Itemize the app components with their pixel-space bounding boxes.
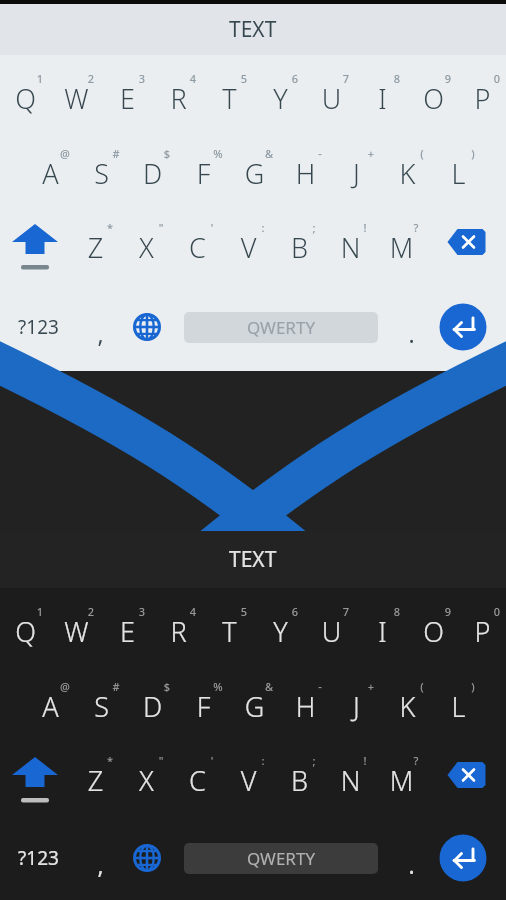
button[interactable]: , [76,816,124,900]
staticText: ; [305,753,323,768]
button[interactable]: B [274,738,325,816]
staticText: I [357,613,408,650]
staticText: TEXT [229,545,277,574]
button[interactable]: C [172,738,223,816]
button[interactable]: Backspace [427,738,506,816]
button[interactable]: N [325,205,376,283]
button[interactable]: D [127,668,178,738]
button[interactable]: Enter [430,283,496,371]
button[interactable]: Q [0,55,51,135]
button[interactable]: Z [70,205,121,283]
staticText: E [102,613,153,650]
button[interactable]: I [357,588,408,668]
button[interactable]: Shift [0,205,70,283]
button[interactable]: Backspace [427,205,506,283]
button[interactable]: Z [70,738,121,816]
staticText: O [408,80,459,117]
staticText: 9 [439,71,457,86]
staticText: V [223,762,274,799]
button[interactable]: E [102,55,153,135]
button[interactable]: A [25,135,76,205]
staticText: 6 [286,71,304,86]
staticText: - [311,146,329,161]
button[interactable]: K [382,135,433,205]
button[interactable]: ?123 [0,816,76,900]
button[interactable]: H [280,668,331,738]
button[interactable]: W [51,588,102,668]
staticText: 4 [184,71,202,86]
button[interactable]: K [382,668,433,738]
staticText: ?123 [18,314,59,340]
button[interactable]: Shift [0,738,70,816]
button[interactable]: Change language [124,283,170,371]
button[interactable]: C [172,205,223,283]
button[interactable]: S [76,668,127,738]
button[interactable]: . [392,283,430,371]
staticText: + [362,679,380,694]
button[interactable]: R [153,588,204,668]
button[interactable]: J [331,135,382,205]
button[interactable]: S [76,135,127,205]
button[interactable]: . [392,816,430,900]
staticText: E [102,80,153,117]
button[interactable]: QWERTY [184,843,378,874]
button[interactable]: F [178,135,229,205]
staticText: ) [464,146,482,161]
button[interactable]: Y [255,588,306,668]
button[interactable]: H [280,135,331,205]
button[interactable]: O [408,55,459,135]
button[interactable]: Q [0,588,51,668]
staticText: 6 [286,604,304,619]
staticText: R [153,613,204,650]
button[interactable]: QWERTY [184,312,378,343]
staticText: 5 [235,71,253,86]
button[interactable]: M [376,205,427,283]
staticText: J [331,688,382,725]
staticText: 7 [337,604,355,619]
button[interactable]: X [121,205,172,283]
staticText: 1 [31,604,49,619]
button[interactable]: A [25,668,76,738]
button[interactable]: P [459,55,506,135]
button[interactable]: T [204,55,255,135]
button[interactable]: Enter [430,816,496,900]
button[interactable]: ?123 [0,283,76,371]
staticText: ?123 [18,845,59,871]
button[interactable]: B [274,205,325,283]
button[interactable]: W [51,55,102,135]
button[interactable]: X [121,738,172,816]
button[interactable]: G [229,135,280,205]
staticText: B [274,762,325,799]
staticText: H [280,688,331,725]
button[interactable]: F [178,668,229,738]
staticText: A [25,688,76,725]
staticText: . [408,318,415,349]
button[interactable]: I [357,55,408,135]
staticText: ( [413,679,431,694]
button[interactable]: L [433,668,484,738]
button[interactable]: U [306,55,357,135]
button[interactable]: L [433,135,484,205]
button[interactable]: G [229,668,280,738]
button[interactable]: , [76,283,124,371]
button[interactable]: U [306,588,357,668]
button[interactable]: E [102,588,153,668]
button[interactable]: P [459,588,506,668]
button[interactable]: T [204,588,255,668]
staticText: S [76,155,127,192]
button[interactable]: M [376,738,427,816]
button[interactable]: N [325,738,376,816]
button[interactable]: Y [255,55,306,135]
button[interactable]: Change language [124,816,170,900]
staticText: T [204,80,255,117]
button[interactable]: R [153,55,204,135]
staticText: 8 [388,71,406,86]
staticText: D [127,155,178,192]
button[interactable]: V [223,205,274,283]
button[interactable]: D [127,135,178,205]
button[interactable]: O [408,588,459,668]
button[interactable]: J [331,668,382,738]
staticText: D [127,688,178,725]
staticText: J [331,155,382,192]
button[interactable]: V [223,738,274,816]
